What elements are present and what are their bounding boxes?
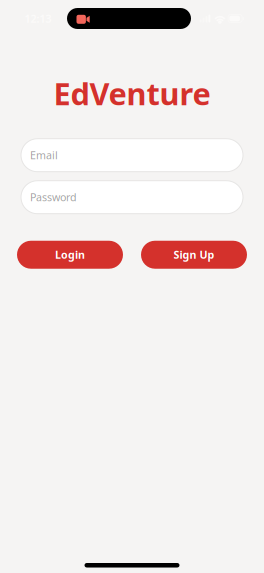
staticText: EdVenture	[53, 73, 210, 114]
button[interactable]: Email	[21, 139, 243, 172]
button[interactable]: Password	[21, 181, 243, 214]
staticText: Email	[30, 148, 58, 162]
staticText: Login	[55, 248, 85, 262]
staticText: Password	[30, 190, 77, 204]
button[interactable]: Sign Up	[141, 241, 247, 269]
button[interactable]: Login	[17, 241, 123, 269]
staticText: Sign Up	[173, 248, 214, 262]
